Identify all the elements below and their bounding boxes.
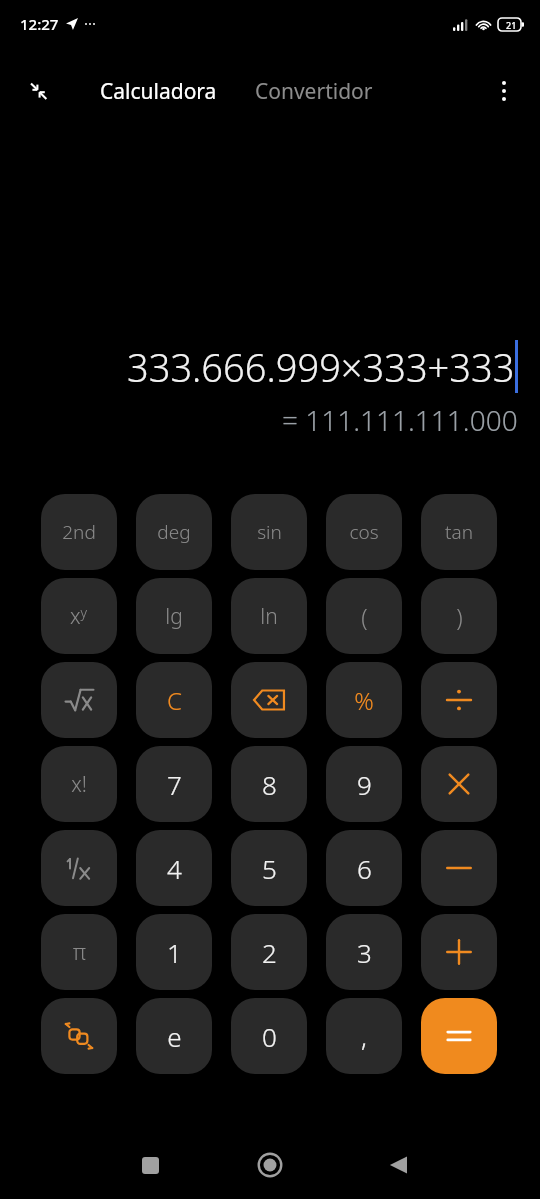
button[interactable]: xy xyxy=(41,578,117,654)
button[interactable]: More options xyxy=(482,69,526,113)
button[interactable]: e xyxy=(136,998,212,1074)
button[interactable]: Collapse xyxy=(18,71,58,111)
staticText: Convertidor xyxy=(255,77,373,106)
staticText: cos xyxy=(349,519,379,545)
button[interactable]: tan xyxy=(421,494,497,570)
button[interactable]: x! xyxy=(41,746,117,822)
staticText: 5 xyxy=(262,851,277,886)
button[interactable]: 7 xyxy=(136,746,212,822)
button[interactable]: 5 xyxy=(231,830,307,906)
button[interactable]: ( xyxy=(326,578,402,654)
staticText: ) xyxy=(456,601,463,632)
button[interactable]: ln xyxy=(231,578,307,654)
button[interactable]: 0 xyxy=(231,998,307,1074)
button[interactable]: , xyxy=(326,998,402,1074)
button[interactable]: 2nd xyxy=(41,494,117,570)
staticText: tan xyxy=(445,519,473,545)
staticText: 2nd xyxy=(62,519,96,545)
staticText: 1 xyxy=(167,935,182,970)
staticText: ( xyxy=(361,601,368,632)
staticText: ln xyxy=(260,602,278,631)
button[interactable]: deg xyxy=(136,494,212,570)
button[interactable]: 4 xyxy=(136,830,212,906)
button[interactable]: sin xyxy=(231,494,307,570)
button[interactable]: Convertidor xyxy=(253,71,375,112)
staticText: 8 xyxy=(262,767,277,802)
staticText: 4 xyxy=(167,851,182,886)
staticText: 21 xyxy=(506,19,517,31)
staticText: lg xyxy=(165,602,183,631)
button[interactable]: Recent apps xyxy=(128,1143,172,1187)
button[interactable]: % xyxy=(326,662,402,738)
button[interactable]: Minus xyxy=(421,830,497,906)
button[interactable]: One over x xyxy=(41,830,117,906)
button[interactable]: 3 xyxy=(326,914,402,990)
button[interactable]: ) xyxy=(421,578,497,654)
staticText: 333.666.999×333+333 xyxy=(127,341,515,393)
button[interactable]: Square root xyxy=(41,662,117,738)
button[interactable]: Equals xyxy=(421,998,497,1074)
staticText: C xyxy=(167,684,182,717)
button[interactable]: π xyxy=(41,914,117,990)
button[interactable]: 6 xyxy=(326,830,402,906)
button[interactable]: cos xyxy=(326,494,402,570)
staticText: Calculadora xyxy=(100,77,217,106)
staticText: % xyxy=(354,684,374,717)
staticText: = 111.111.111.000 xyxy=(282,401,518,439)
button[interactable]: C xyxy=(136,662,212,738)
button[interactable]: 1 xyxy=(136,914,212,990)
staticText: 2 xyxy=(262,935,277,970)
button[interactable]: Home xyxy=(247,1142,293,1188)
button[interactable]: Plus xyxy=(421,914,497,990)
staticText: 0 xyxy=(262,1019,277,1054)
button[interactable]: lg xyxy=(136,578,212,654)
staticText: sin xyxy=(257,519,282,545)
staticText: π xyxy=(73,938,86,967)
button[interactable]: Multiply xyxy=(421,746,497,822)
button[interactable]: Divide xyxy=(421,662,497,738)
button[interactable]: 8 xyxy=(231,746,307,822)
button[interactable]: Convert xyxy=(41,998,117,1074)
staticText: 12:27 xyxy=(20,14,59,34)
staticText: 3 xyxy=(357,935,372,970)
button[interactable]: 9 xyxy=(326,746,402,822)
button[interactable]: 2 xyxy=(231,914,307,990)
staticText: , xyxy=(361,1019,367,1054)
staticText: 6 xyxy=(357,851,372,886)
button[interactable]: Backspace xyxy=(231,662,307,738)
button[interactable]: Back xyxy=(376,1143,420,1187)
staticText: 7 xyxy=(167,767,182,802)
staticText: 9 xyxy=(357,767,372,802)
staticText: x! xyxy=(71,770,87,799)
staticText: e xyxy=(167,1019,182,1054)
staticText: deg xyxy=(157,519,191,545)
staticText: xy xyxy=(70,602,88,631)
button[interactable]: Calculadora xyxy=(98,71,219,112)
